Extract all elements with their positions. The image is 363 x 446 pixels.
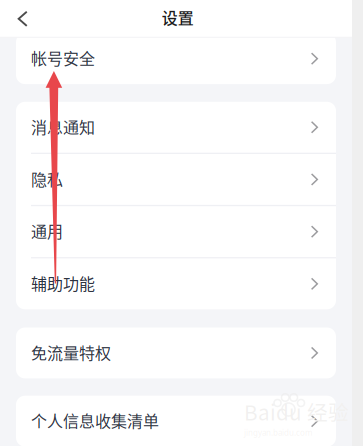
staticText: 免流量特权: [31, 341, 111, 364]
staticText: 通用: [31, 219, 63, 242]
staticText: 个人信息收集清单: [31, 409, 159, 432]
staticText: 设置: [162, 6, 194, 29]
button[interactable]: Back: [5, 0, 41, 38]
staticText: jingyan.baidu.com: [244, 427, 312, 438]
staticText: Baidu 经验: [244, 396, 349, 426]
staticText: 隐私: [31, 167, 63, 190]
button[interactable]: 辅助功能: [16, 258, 336, 309]
button[interactable]: 消息通知: [16, 102, 336, 153]
staticText: 帐号安全: [31, 46, 95, 69]
button[interactable]: 隐私: [16, 154, 336, 205]
staticText: 消息通知: [31, 115, 95, 138]
button[interactable]: 通用: [16, 206, 336, 257]
staticText: 辅助功能: [31, 271, 95, 295]
button[interactable]: 个人信息收集清单: [16, 396, 336, 446]
button[interactable]: 帐号安全: [16, 33, 336, 84]
button[interactable]: 免流量特权: [16, 327, 336, 378]
